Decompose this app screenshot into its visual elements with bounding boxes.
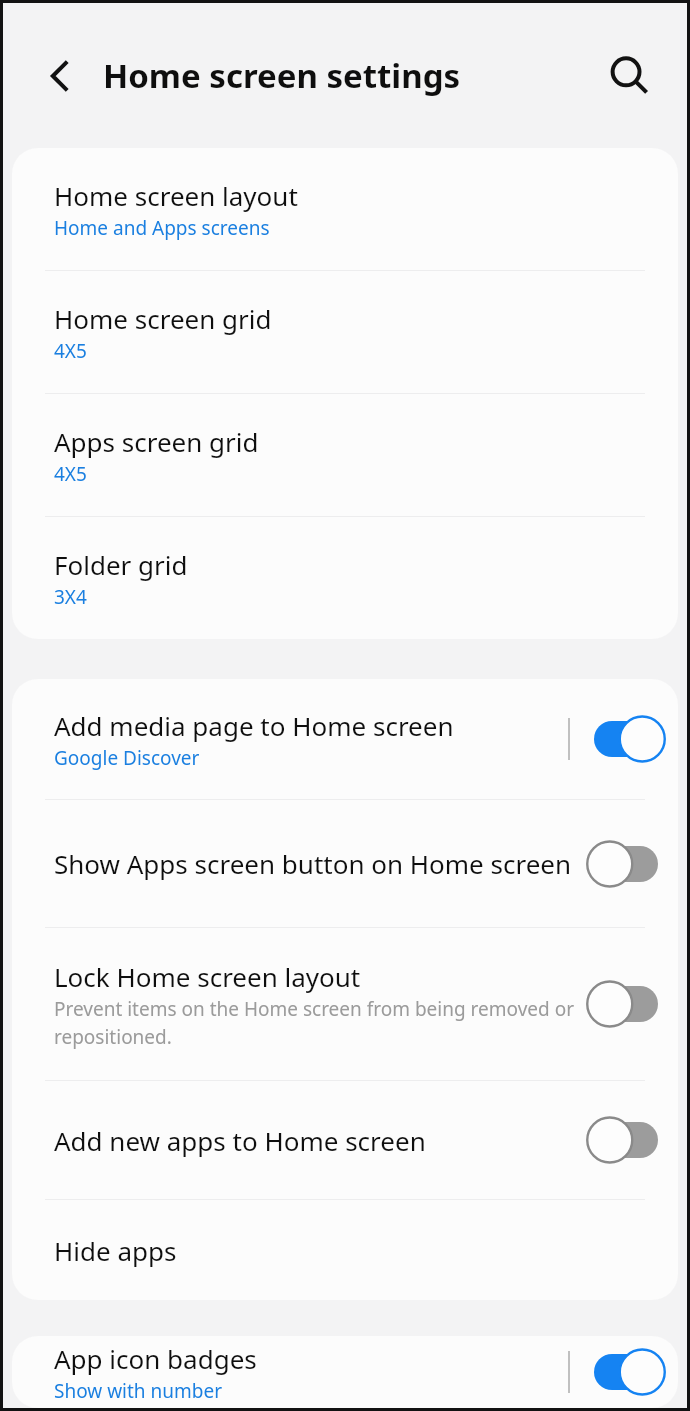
button[interactable]: App icon badges [12, 1336, 678, 1408]
button[interactable]: Lock Home screen layout [12, 928, 678, 1080]
staticText: Hide apps [54, 1233, 177, 1268]
staticText: Apps screen grid [54, 424, 259, 459]
button[interactable]: Add new apps to Home screen [12, 1081, 678, 1199]
button[interactable]: Search [597, 44, 661, 108]
staticText: Add new apps to Home screen [54, 1123, 426, 1158]
button[interactable]: Switch off [586, 839, 666, 889]
button[interactable]: Switch off [586, 1115, 666, 1165]
staticText: Home and Apps screens [54, 215, 270, 241]
staticText: Folder grid [54, 547, 188, 582]
staticText: 4X5 [54, 338, 87, 364]
staticText: 4X5 [54, 461, 87, 487]
button[interactable]: Home screen grid [12, 271, 678, 393]
button[interactable]: Switch on [586, 714, 666, 764]
button[interactable]: Apps screen grid [12, 394, 678, 516]
button[interactable]: Hide apps [12, 1200, 678, 1300]
button[interactable]: Show Apps screen button on Home screen [12, 800, 678, 927]
staticText: App icon badges [54, 1341, 257, 1376]
staticText: Home screen layout [54, 178, 298, 213]
staticText: Show Apps screen button on Home screen [54, 846, 572, 881]
button[interactable]: Home screen layout [12, 148, 678, 270]
button[interactable]: Folder grid [12, 517, 678, 639]
button[interactable]: Back [29, 45, 91, 107]
staticText: Lock Home screen layout [54, 959, 361, 994]
staticText: Home screen grid [54, 301, 272, 336]
button[interactable]: Add media page to Home screen [12, 679, 678, 799]
button[interactable]: Switch off [586, 979, 666, 1029]
staticText: Show with number [54, 1378, 223, 1404]
button[interactable]: Switch on [586, 1347, 666, 1397]
staticText: 3X4 [54, 584, 87, 610]
staticText: Prevent items on the Home screen from be… [54, 996, 574, 1050]
staticText: Google Discover [54, 745, 200, 771]
staticText: Home screen settings [103, 53, 461, 98]
staticText: Add media page to Home screen [54, 708, 454, 743]
